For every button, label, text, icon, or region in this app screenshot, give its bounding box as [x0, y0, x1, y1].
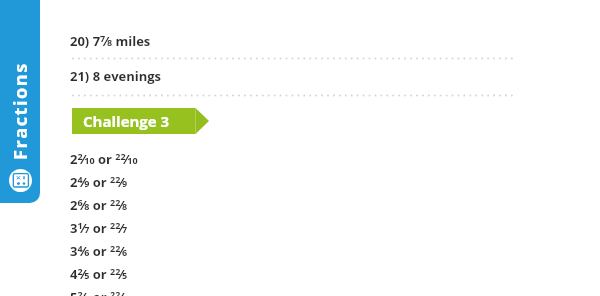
staticText: 52⁄4 or 22⁄4	[70, 288, 128, 296]
staticText: 24⁄9 or 22⁄9	[70, 173, 128, 191]
staticText: Fractions	[8, 62, 33, 160]
staticText: 34⁄6 or 22⁄6	[70, 242, 128, 260]
button[interactable]: Challenge 3	[72, 108, 209, 134]
staticText: 26⁄8 or 22⁄8	[70, 196, 128, 214]
staticText: 21) 8 evenings	[70, 67, 162, 85]
staticText: Challenge 3	[83, 111, 170, 131]
staticText: 42⁄5 or 22⁄5	[70, 265, 128, 283]
staticText: 22⁄10 or 22⁄10	[70, 150, 138, 168]
button[interactable]: Fractions section	[0, 0, 40, 203]
staticText: 20) 77⁄8 miles	[70, 32, 151, 50]
button[interactable]: Maths topic icon	[9, 169, 32, 192]
staticText: 31⁄7 or 22⁄7	[70, 219, 128, 237]
